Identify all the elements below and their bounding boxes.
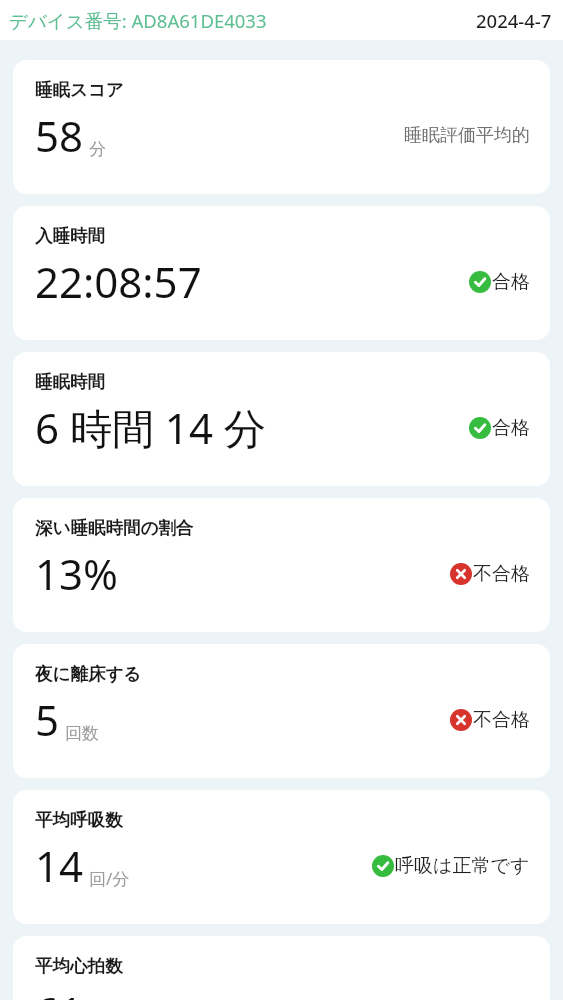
staticText: 58 [35, 107, 84, 164]
staticText: 6 時間 14 分 [35, 399, 266, 456]
staticText: 不合格 [473, 708, 530, 732]
staticText: 分 [89, 139, 106, 160]
staticText: 入睡時間 [35, 225, 105, 247]
staticText: 回数 [65, 723, 99, 744]
staticText: 14 [35, 837, 84, 894]
button[interactable]: 夜に離床する [13, 644, 550, 778]
other: Pass [469, 417, 491, 439]
staticText: 2024-4-7 [476, 8, 552, 33]
staticText: 5 [35, 691, 60, 748]
staticText: 61 [35, 983, 84, 1000]
staticText: 睡眠時間 [35, 371, 105, 393]
button[interactable]: 平均呼吸数 [13, 790, 550, 924]
staticText: 回/分 [89, 867, 130, 890]
button[interactable]: 平均心拍数 [13, 936, 550, 1000]
other: Fail [450, 709, 472, 731]
staticText: 深い睡眠時間の割合 [35, 517, 194, 539]
staticText: 睡眠スコア [35, 79, 124, 101]
staticText: 平均心拍数 [35, 955, 123, 977]
button[interactable]: 深い睡眠時間の割合 [13, 498, 550, 632]
staticText: 不合格 [473, 562, 530, 586]
staticText: 22:08:57 [35, 253, 202, 310]
staticText: 合格 [492, 270, 530, 294]
other: Fail [450, 563, 472, 585]
staticText: 呼吸は正常です [395, 854, 530, 878]
staticText: 13% [35, 545, 118, 602]
other: Pass [469, 271, 491, 293]
button[interactable]: 睡眠時間 [13, 352, 550, 486]
staticText: 合格 [492, 416, 530, 440]
staticText: デバイス番号: AD8A61DE4033 [9, 8, 267, 33]
other: Pass [372, 855, 394, 877]
button[interactable]: 睡眠スコア [13, 60, 550, 194]
button[interactable]: 入睡時間 [13, 206, 550, 340]
staticText: 平均呼吸数 [35, 809, 123, 831]
staticText: 夜に離床する [35, 663, 142, 685]
staticText: 睡眠評価平均的 [404, 124, 530, 147]
